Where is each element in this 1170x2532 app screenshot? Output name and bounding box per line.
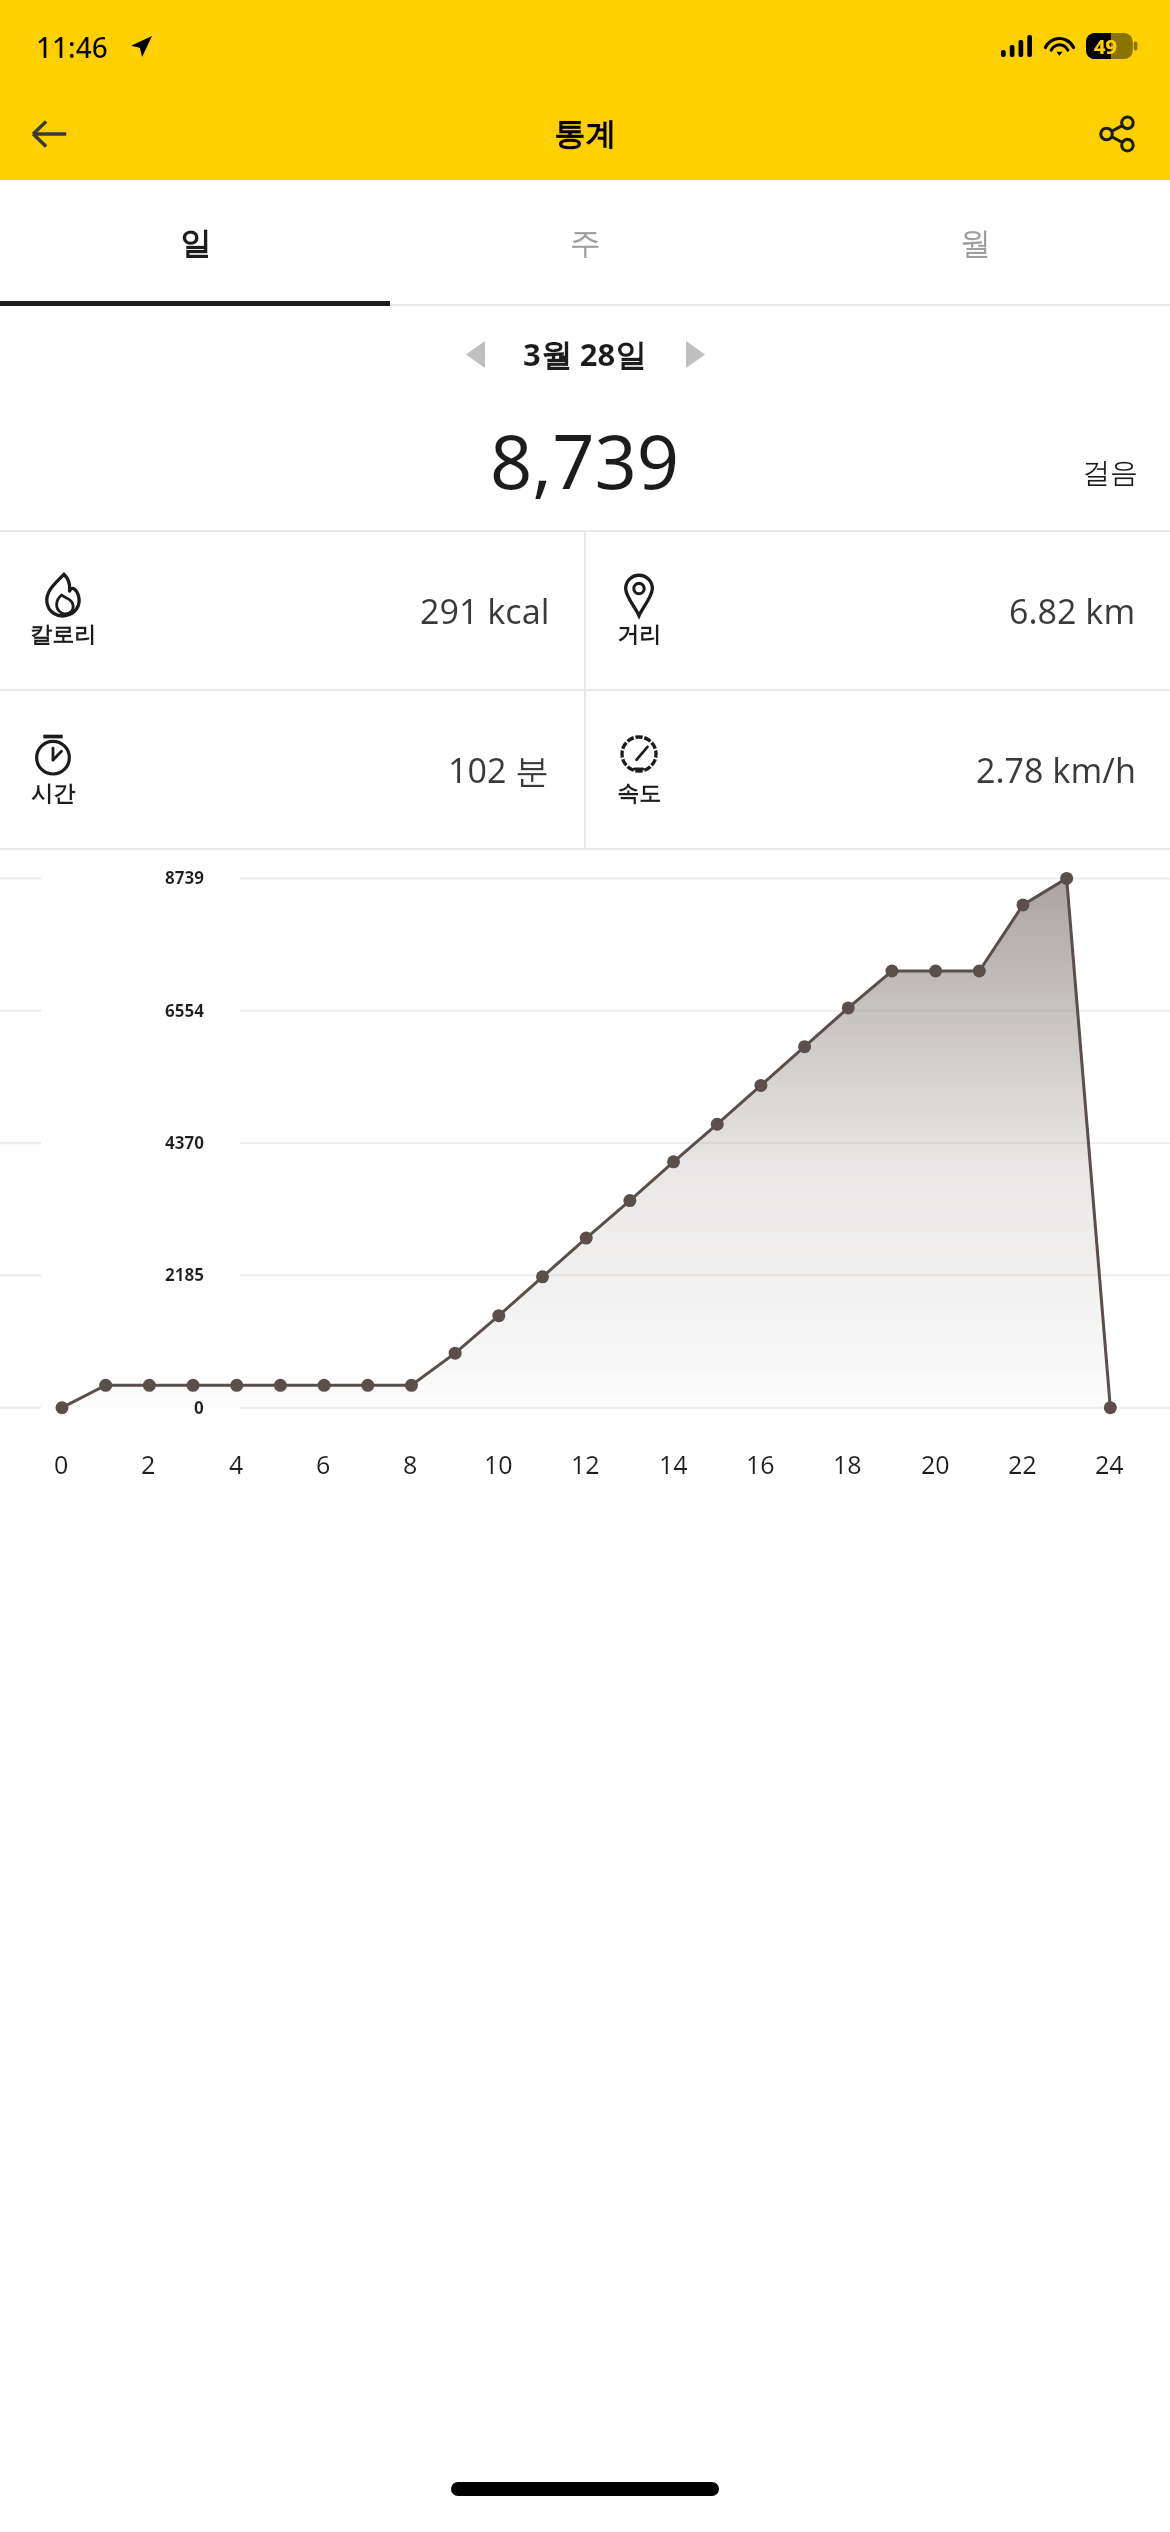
button[interactable]: 거리: [586, 532, 1170, 689]
staticText: 14: [659, 1447, 688, 1481]
button[interactable]: Share: [1084, 101, 1150, 167]
staticText: 11:46: [36, 28, 108, 66]
staticText: 10: [484, 1447, 513, 1481]
staticText: 월: [960, 224, 991, 263]
staticText: 2185: [165, 1263, 204, 1286]
button[interactable]: Next day: [665, 324, 725, 384]
button[interactable]: 칼로리: [0, 532, 584, 689]
staticText: 일: [180, 224, 211, 263]
staticText: 2: [141, 1447, 156, 1481]
button[interactable]: 월: [780, 180, 1170, 306]
staticText: 2.78 km/h: [976, 747, 1136, 793]
button[interactable]: 주: [390, 180, 780, 306]
staticText: 0: [54, 1447, 69, 1481]
staticText: 6554: [165, 999, 204, 1022]
staticText: 3월 28일: [523, 333, 647, 375]
staticText: 주: [570, 224, 601, 263]
staticText: 4370: [165, 1131, 204, 1154]
button[interactable]: Back: [16, 101, 82, 167]
staticText: 6.82 km: [1009, 588, 1136, 634]
button[interactable]: Previous day: [445, 324, 505, 384]
staticText: 6: [316, 1447, 331, 1481]
button[interactable]: 일: [0, 180, 390, 306]
button[interactable]: 속도: [586, 691, 1170, 848]
staticText: 8: [403, 1447, 418, 1481]
staticText: 18: [833, 1447, 862, 1481]
staticText: 102 분: [448, 747, 550, 793]
staticText: 12: [571, 1447, 600, 1481]
staticText: 속도: [617, 780, 661, 808]
staticText: 24: [1095, 1447, 1124, 1481]
staticText: 8739: [165, 866, 204, 889]
staticText: 22: [1008, 1447, 1037, 1481]
staticText: 걸음: [1082, 455, 1138, 490]
staticText: 0: [194, 1396, 204, 1419]
staticText: 8,739: [490, 410, 680, 511]
staticText: 거리: [617, 621, 661, 649]
staticText: 4: [229, 1447, 244, 1481]
staticText: 291 kcal: [420, 588, 550, 634]
button[interactable]: 시간: [0, 691, 584, 848]
staticText: 칼로리: [30, 621, 96, 649]
staticText: 16: [746, 1447, 775, 1481]
staticText: 49: [1094, 33, 1117, 59]
staticText: 통계: [554, 115, 616, 154]
staticText: 20: [921, 1447, 950, 1481]
staticText: 시간: [31, 780, 75, 808]
